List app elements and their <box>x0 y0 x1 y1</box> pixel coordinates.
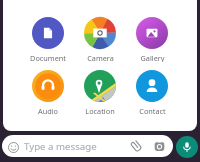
button[interactable]: Location <box>74 70 126 115</box>
staticText: Type a message <box>24 140 97 153</box>
button[interactable]: Audio <box>22 70 74 115</box>
button[interactable]: Gallery <box>126 17 178 62</box>
button[interactable]: Attach <box>128 140 141 153</box>
staticText: Contact <box>139 106 166 115</box>
button[interactable]: Record voice message <box>176 136 198 158</box>
staticText: Location <box>85 106 115 115</box>
staticText: Document <box>30 53 66 62</box>
staticText: Gallery <box>140 53 165 62</box>
button[interactable]: Document <box>22 17 74 62</box>
button[interactable]: Camera <box>74 17 126 62</box>
staticText: Audio <box>38 106 58 115</box>
staticText: Camera <box>87 53 114 62</box>
button[interactable]: Camera <box>154 141 165 152</box>
button[interactable]: Contact <box>126 70 178 115</box>
button[interactable]: Emoji <box>8 142 19 153</box>
button[interactable]: Emoji <box>2 135 173 157</box>
